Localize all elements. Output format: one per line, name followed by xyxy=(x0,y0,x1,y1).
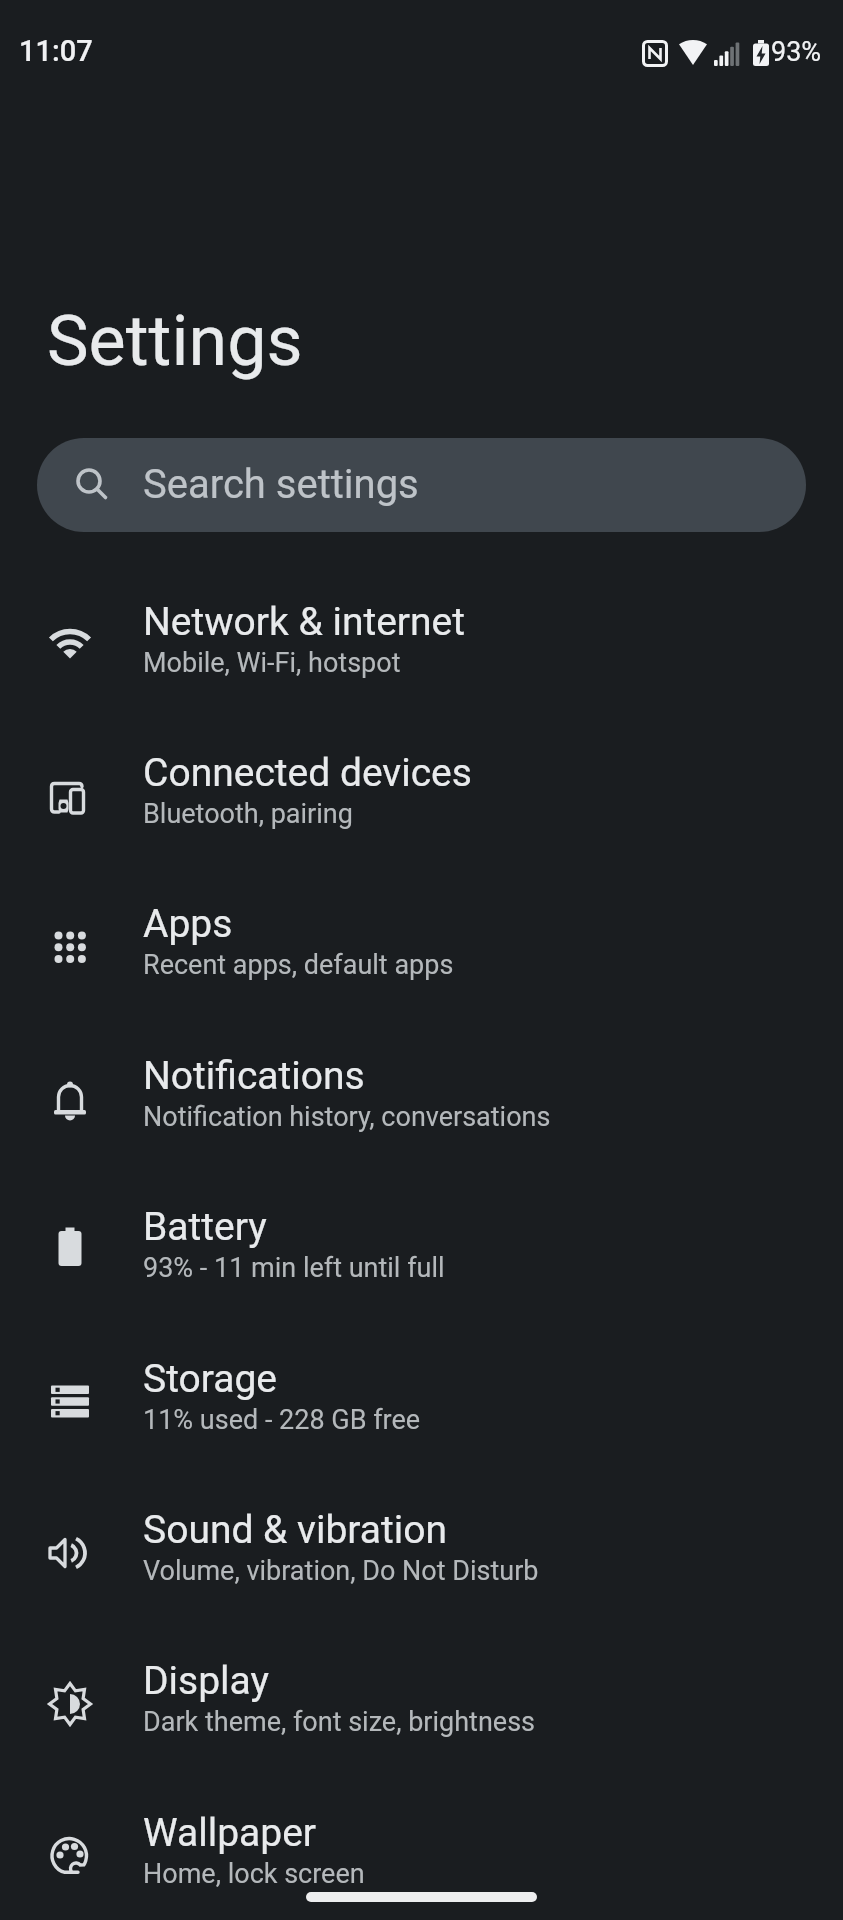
staticText: Settings xyxy=(47,300,303,382)
staticText: Storage xyxy=(143,1356,278,1402)
staticText: Search settings xyxy=(143,461,419,508)
button[interactable]: Sound & vibration xyxy=(0,1477,843,1628)
button[interactable]: Battery xyxy=(0,1174,843,1325)
staticText: Sound & vibration xyxy=(143,1507,448,1553)
button[interactable]: Apps xyxy=(0,871,843,1022)
button[interactable]: Search settings xyxy=(37,438,806,532)
button[interactable]: Wallpaper xyxy=(0,1780,843,1920)
button[interactable]: Storage xyxy=(0,1326,843,1477)
staticText: Battery xyxy=(143,1204,267,1250)
staticText: Mobile, Wi-Fi, hotspot xyxy=(143,647,401,679)
button[interactable]: Connected devices xyxy=(0,720,843,871)
staticText: 93% xyxy=(771,36,822,68)
staticText: Bluetooth, pairing xyxy=(143,798,353,830)
staticText: Dark theme, font size, brightness xyxy=(143,1706,536,1738)
staticText: Notifications xyxy=(143,1053,365,1099)
staticText: Volume, vibration, Do Not Disturb xyxy=(143,1555,539,1587)
button[interactable]: Network & internet xyxy=(0,569,843,720)
button[interactable]: Display xyxy=(0,1628,843,1779)
staticText: Network & internet xyxy=(143,599,466,645)
staticText: 11:07 xyxy=(19,34,93,68)
staticText: Home, lock screen xyxy=(143,1858,365,1890)
staticText: Display xyxy=(143,1658,269,1704)
staticText: Apps xyxy=(143,901,233,947)
staticText: Recent apps, default apps xyxy=(143,949,454,981)
staticText: 93% - 11 min left until full xyxy=(143,1252,445,1284)
button[interactable]: Notifications xyxy=(0,1023,843,1174)
staticText: Notification history, conversations xyxy=(143,1101,551,1133)
staticText: Connected devices xyxy=(143,750,472,796)
staticText: 11% used - 228 GB free xyxy=(143,1404,421,1436)
staticText: Wallpaper xyxy=(143,1810,317,1856)
